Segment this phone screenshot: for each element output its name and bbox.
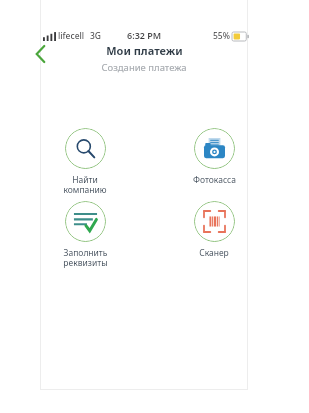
staticText: Мои платежи [106,43,183,58]
button[interactable]: Заполнить реквизиты [43,201,127,269]
button[interactable]: Фотокасса [172,128,256,186]
staticText: Фотокасса [193,174,236,186]
staticText: Найти компанию [63,174,107,196]
staticText: Сканер [199,247,229,259]
staticText: lifecell [58,30,85,42]
staticText: 3G [90,30,102,42]
button[interactable]: Найти компанию [43,128,127,196]
staticText: 6:32 PM [127,29,162,41]
button[interactable]: Сканер [172,201,256,259]
staticText: Заполнить реквизиты [63,247,108,269]
staticText: 55% [213,30,230,42]
button[interactable]: Назад [28,42,52,66]
staticText: Создание платежа [101,61,187,74]
